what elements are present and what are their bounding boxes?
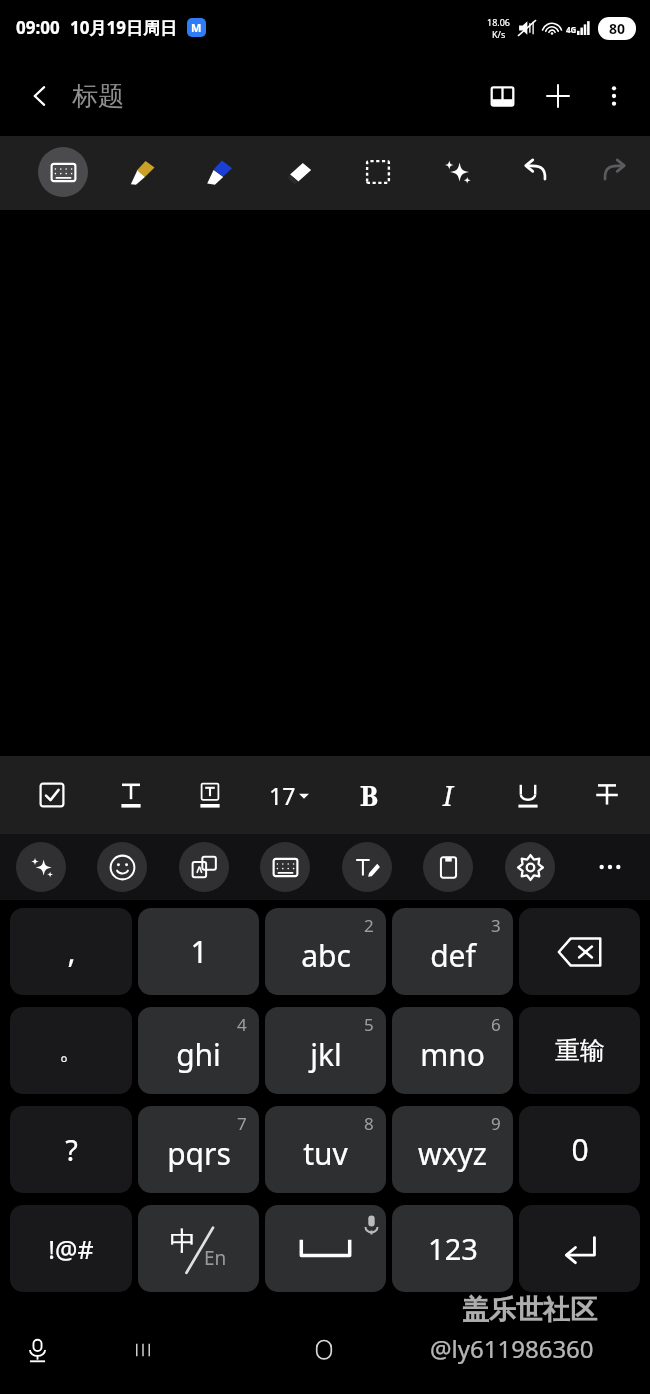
staticText: 6 <box>491 1013 501 1036</box>
staticText: 123 <box>428 1229 478 1268</box>
button[interactable]: ? <box>10 1106 132 1193</box>
staticText: jkl <box>310 1034 342 1075</box>
button[interactable]: Emoji <box>97 842 147 892</box>
button[interactable]: , <box>10 908 132 995</box>
button[interactable]: I <box>423 770 473 820</box>
staticText: M <box>191 20 202 35</box>
staticText: !@# <box>48 1232 94 1266</box>
button[interactable]: wxyz <box>392 1106 513 1193</box>
button[interactable]: Enter <box>519 1205 640 1292</box>
button[interactable]: 重输 <box>519 1007 640 1094</box>
staticText: 1 <box>190 931 208 972</box>
button[interactable]: pqrs <box>138 1106 259 1193</box>
button[interactable]: Add <box>530 68 586 124</box>
button[interactable]: 17 <box>257 770 321 820</box>
staticText: def <box>430 935 476 976</box>
staticText: 中 <box>170 1225 196 1258</box>
staticText: 80 <box>609 19 626 38</box>
staticText: 17 <box>269 780 296 811</box>
button[interactable]: def <box>392 908 513 995</box>
button[interactable]: AI <box>432 147 482 197</box>
staticText: 5 <box>364 1013 374 1036</box>
button[interactable]: Eraser <box>274 147 324 197</box>
button[interactable]: AI assist <box>16 842 66 892</box>
button[interactable]: Back <box>14 70 66 122</box>
staticText: pqrs <box>167 1133 231 1174</box>
staticText: 8 <box>364 1112 374 1135</box>
staticText: K/s <box>492 28 506 40</box>
button[interactable]: 1 <box>138 908 259 995</box>
button[interactable]: 。 <box>10 1007 132 1094</box>
button[interactable]: Keyboard layout <box>260 842 310 892</box>
button[interactable]: !@# <box>10 1205 132 1292</box>
button[interactable]: Recent apps <box>119 1326 167 1374</box>
button[interactable]: More options <box>586 68 642 124</box>
staticText: 盖乐世社区 <box>462 1293 597 1327</box>
staticText: 重输 <box>555 1035 605 1066</box>
button[interactable]: Undo <box>511 147 561 197</box>
staticText: 4G <box>566 24 577 35</box>
staticText: 3 <box>491 914 501 937</box>
staticText: 2 <box>364 914 374 937</box>
button[interactable]: Text background <box>185 770 235 820</box>
button[interactable]: Highlighter <box>195 147 245 197</box>
staticText: ? <box>65 1130 78 1169</box>
button[interactable]: ghi <box>138 1007 259 1094</box>
button[interactable]: Voice input <box>13 1326 61 1374</box>
button[interactable]: Handwriting <box>342 842 392 892</box>
staticText: 标题 <box>72 80 124 113</box>
button[interactable]: Home <box>300 1326 348 1374</box>
staticText: B <box>360 777 379 814</box>
button[interactable]: Keyboard <box>38 147 88 197</box>
button[interactable]: More <box>585 842 635 892</box>
button[interactable]: B <box>344 770 394 820</box>
staticText: @ly611986360 <box>430 1332 594 1365</box>
staticText: ghi <box>176 1034 221 1075</box>
staticText: 18.06 <box>487 16 511 28</box>
button[interactable]: 123 <box>392 1205 513 1292</box>
staticText: 09:00 <box>16 16 60 39</box>
staticText: 4 <box>237 1013 247 1036</box>
button[interactable]: Checklist <box>27 770 77 820</box>
staticText: En <box>204 1245 227 1271</box>
button[interactable]: Redo <box>589 147 639 197</box>
staticText: 10月19日周日 <box>70 16 177 39</box>
staticText: tuv <box>303 1133 348 1174</box>
button[interactable]: Switch language <box>138 1205 259 1292</box>
button[interactable]: Space <box>265 1205 386 1292</box>
button[interactable]: Select <box>353 147 403 197</box>
button[interactable]: Underline <box>503 770 553 820</box>
staticText: 0 <box>571 1129 589 1170</box>
staticText: 9 <box>491 1112 501 1135</box>
button[interactable]: Text color <box>106 770 156 820</box>
button[interactable]: Strikethrough <box>582 770 632 820</box>
staticText: abc <box>301 935 351 976</box>
staticText: 7 <box>237 1112 247 1135</box>
button[interactable]: 0 <box>519 1106 640 1193</box>
button[interactable]: Backspace <box>519 908 640 995</box>
button[interactable]: jkl <box>265 1007 386 1094</box>
staticText: 。 <box>59 1036 83 1066</box>
button[interactable]: Translate <box>179 842 229 892</box>
button[interactable]: Reading view <box>474 68 530 124</box>
staticText: , <box>67 931 76 972</box>
button[interactable]: Settings <box>505 842 555 892</box>
staticText: wxyz <box>418 1133 487 1174</box>
button[interactable]: Pen <box>118 147 168 197</box>
button[interactable]: mno <box>392 1007 513 1094</box>
staticText: I <box>443 777 453 814</box>
button[interactable]: tuv <box>265 1106 386 1193</box>
button[interactable]: abc <box>265 908 386 995</box>
staticText: mno <box>420 1034 485 1075</box>
button[interactable]: Clipboard <box>423 842 473 892</box>
